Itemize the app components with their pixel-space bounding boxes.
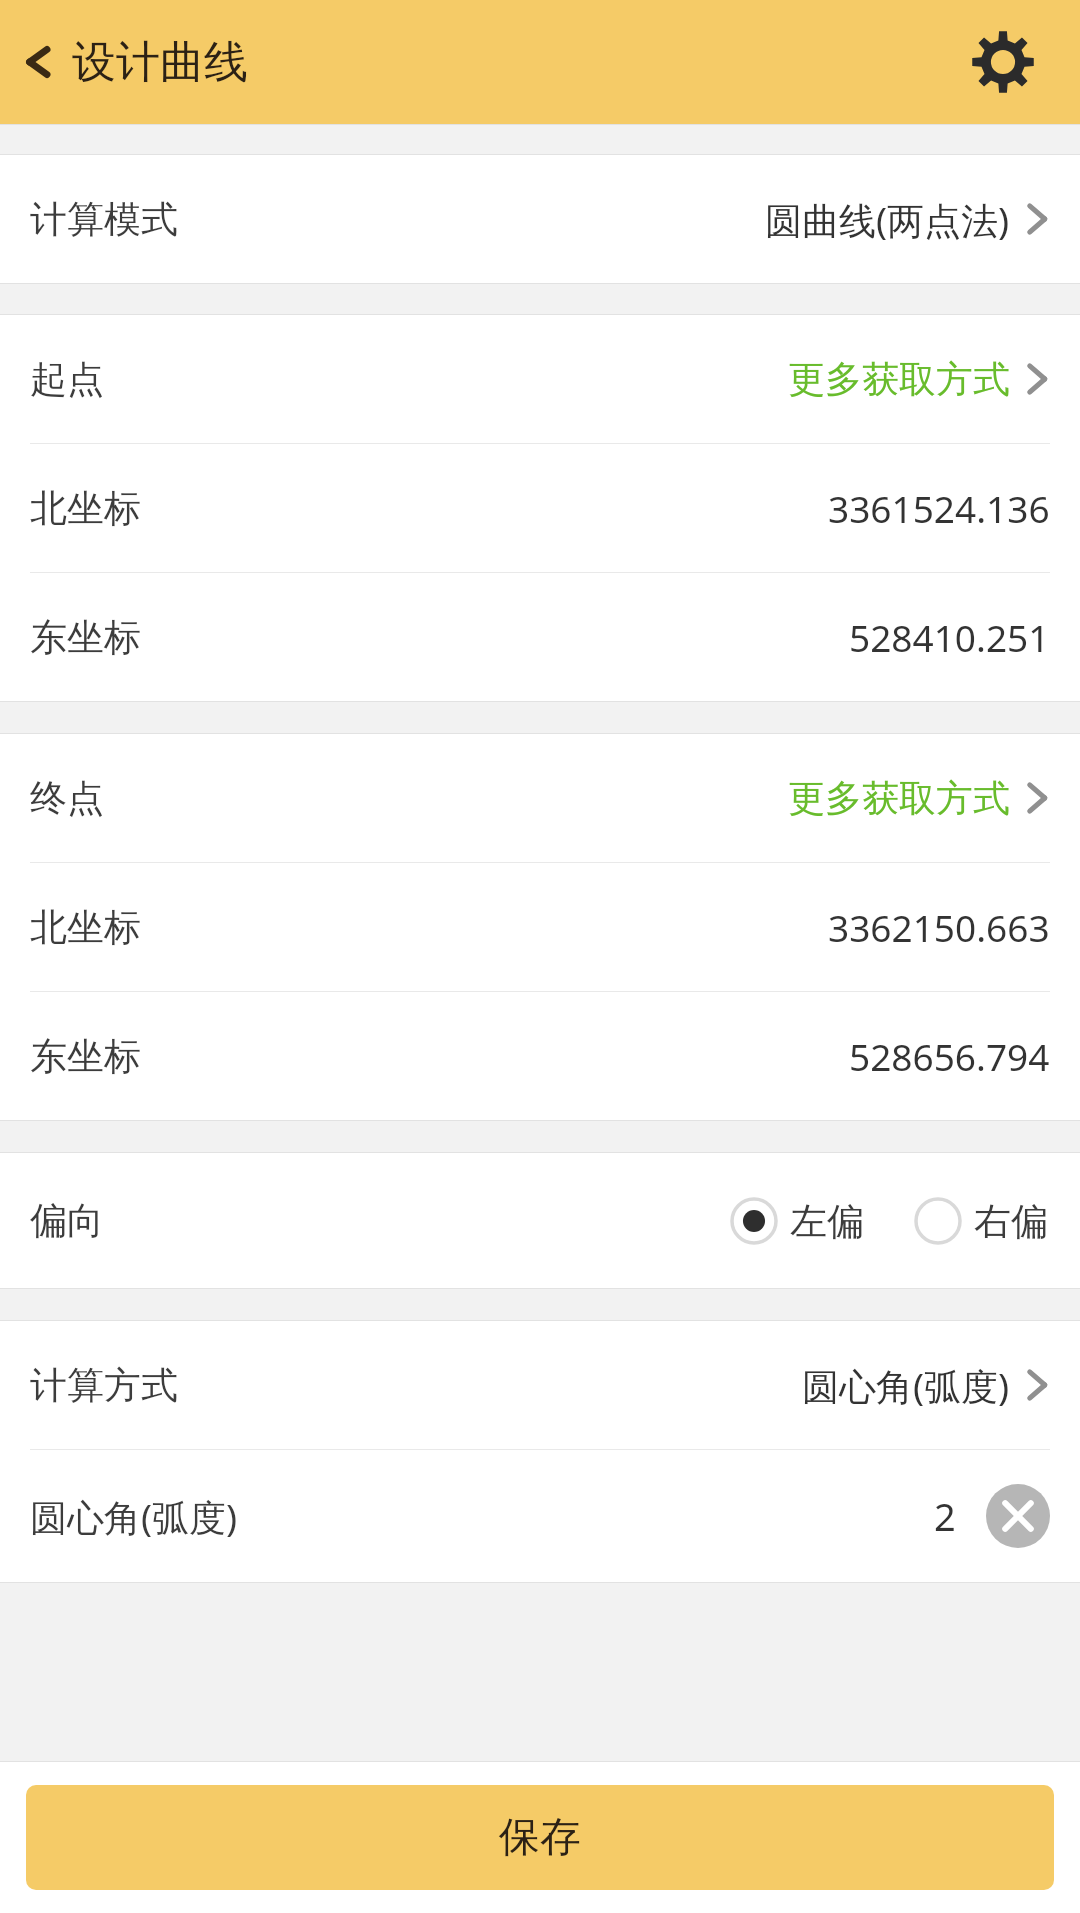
staticText: 计算方式	[30, 1362, 178, 1409]
staticText: 528410.251	[849, 612, 1050, 662]
button[interactable]: 北坐标	[0, 863, 1080, 991]
staticText: 更多获取方式	[788, 775, 1010, 822]
staticText: 圆心角(弧度)	[30, 1491, 238, 1542]
staticText: 3362150.663	[828, 902, 1050, 952]
staticText: 圆曲线(两点法)	[765, 194, 1010, 245]
button[interactable]: Clear	[986, 1484, 1050, 1548]
staticText: 起点	[30, 356, 104, 403]
button[interactable]: 计算模式	[0, 155, 1080, 283]
staticText: 左偏	[790, 1198, 864, 1245]
staticText: 东坐标	[30, 614, 141, 661]
button[interactable]: 东坐标	[0, 992, 1080, 1120]
button[interactable]: 北坐标	[0, 444, 1080, 572]
staticText: 更多获取方式	[788, 356, 1010, 403]
button[interactable]: 保存	[26, 1785, 1054, 1890]
button[interactable]: Settings	[964, 23, 1042, 101]
button[interactable]: 终点	[0, 734, 1080, 862]
staticText: 计算模式	[30, 196, 178, 243]
staticText: 北坐标	[30, 904, 141, 951]
staticText: 右偏	[974, 1198, 1048, 1245]
staticText: 偏向	[30, 1197, 104, 1244]
button[interactable]: 起点	[0, 315, 1080, 443]
staticText: 2	[934, 1490, 956, 1542]
button[interactable]: 东坐标	[0, 573, 1080, 701]
button[interactable]: 左偏	[728, 1197, 866, 1245]
staticText: 528656.794	[849, 1031, 1050, 1081]
button[interactable]: 圆心角(弧度)	[0, 1450, 1080, 1582]
button[interactable]: 计算方式	[0, 1321, 1080, 1449]
staticText: 终点	[30, 775, 104, 822]
staticText: 设计曲线	[72, 35, 248, 90]
staticText: 东坐标	[30, 1033, 141, 1080]
staticText: 圆心角(弧度)	[802, 1360, 1010, 1411]
staticText: 北坐标	[30, 485, 141, 532]
staticText: 3361524.136	[828, 483, 1050, 533]
button[interactable]: 偏向	[0, 1153, 1080, 1288]
button[interactable]: Back	[18, 32, 58, 92]
staticText: 保存	[499, 1812, 581, 1864]
button[interactable]: 右偏	[912, 1197, 1050, 1245]
